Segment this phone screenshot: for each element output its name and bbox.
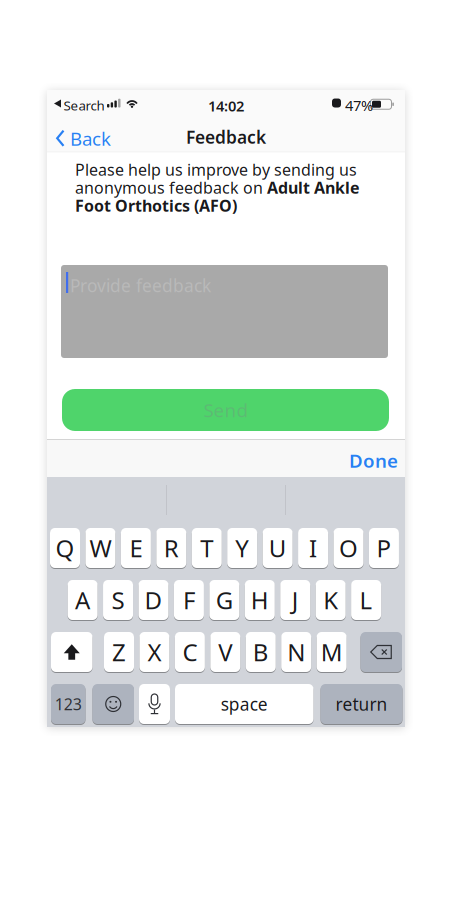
staticText: C (182, 636, 197, 668)
button[interactable]: B (246, 632, 276, 673)
staticText: N (287, 636, 305, 668)
button[interactable]: Send (62, 389, 389, 431)
staticText: M (321, 636, 343, 668)
staticText: O (339, 532, 358, 564)
button[interactable]: R (156, 528, 186, 569)
button[interactable]: K (316, 580, 346, 621)
button[interactable]: U (263, 528, 293, 569)
button[interactable]: Z (104, 632, 134, 673)
button[interactable]: space (175, 684, 313, 725)
button[interactable]: L (351, 580, 381, 621)
staticText: J (292, 584, 299, 616)
staticText: S (111, 584, 124, 616)
button[interactable]: Back (56, 126, 111, 151)
staticText: 14:02 (208, 96, 244, 115)
staticText: G (216, 584, 233, 616)
button[interactable]: G (209, 580, 239, 621)
staticText: B (253, 636, 269, 668)
button[interactable]: N (281, 632, 311, 673)
staticText: Back (70, 126, 111, 151)
button[interactable]: Q (50, 528, 80, 569)
staticText: L (360, 584, 373, 616)
staticText: Feedback (186, 125, 266, 148)
button[interactable]: A (68, 580, 98, 621)
staticText: H (251, 584, 269, 616)
button[interactable]: Delete (360, 632, 402, 673)
button[interactable]: J (280, 580, 310, 621)
button[interactable]: V (210, 632, 240, 673)
button[interactable]: I (298, 528, 328, 569)
button[interactable]: T (192, 528, 222, 569)
staticText: U (269, 532, 287, 564)
button[interactable]: W (85, 528, 115, 569)
staticText: return (335, 692, 387, 715)
staticText: Foot Orthotics (AFO) (75, 195, 237, 216)
staticText: Provide feedback (70, 274, 211, 297)
button[interactable]: C (175, 632, 205, 673)
staticText: F (183, 584, 195, 616)
staticText: X (147, 636, 161, 668)
staticText: anonymous feedback on Adult Ankle (75, 177, 360, 198)
staticText: P (376, 532, 391, 564)
staticText: Send (203, 398, 247, 422)
staticText: W (89, 532, 111, 564)
button[interactable]: M (317, 632, 347, 673)
staticText: Done (349, 448, 398, 473)
staticText: Please help us improve by sending us (75, 159, 357, 180)
button[interactable]: Shift (51, 632, 92, 673)
staticText: I (309, 532, 317, 564)
button[interactable]: Done (349, 448, 398, 473)
staticText: Z (112, 636, 126, 668)
staticText: 123 (55, 693, 82, 715)
button[interactable]: X (139, 632, 169, 673)
button[interactable]: Emoji (92, 684, 134, 725)
button[interactable]: S (103, 580, 133, 621)
button[interactable]: E (121, 528, 151, 569)
button[interactable]: 123 (51, 684, 85, 725)
staticText: V (218, 636, 232, 668)
staticText: T (200, 532, 213, 564)
button[interactable]: H (245, 580, 275, 621)
staticText: R (164, 532, 179, 564)
button[interactable]: Provide feedback (61, 265, 388, 358)
staticText: A (75, 584, 90, 616)
staticText: 47% (345, 95, 373, 115)
staticText: K (323, 584, 338, 616)
staticText: Y (235, 532, 249, 564)
staticText: space (221, 692, 268, 715)
staticText: D (144, 584, 162, 616)
button[interactable]: Dictate (139, 684, 170, 725)
button[interactable]: P (369, 528, 399, 569)
staticText: Q (55, 532, 74, 564)
button[interactable]: D (138, 580, 168, 621)
button[interactable]: O (333, 528, 363, 569)
button[interactable]: Y (227, 528, 257, 569)
button[interactable]: F (174, 580, 204, 621)
staticText: Search (63, 96, 104, 114)
button[interactable]: return (320, 684, 402, 725)
staticText: E (129, 532, 142, 564)
